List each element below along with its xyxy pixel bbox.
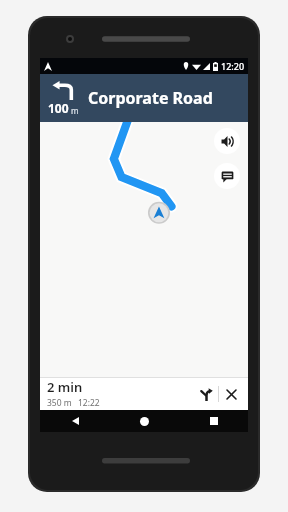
button[interactable]: 100 xyxy=(40,74,248,122)
staticText: 2 min xyxy=(47,378,83,396)
button[interactable]: Recent apps xyxy=(179,410,248,432)
staticText: Corporate Road xyxy=(88,87,213,109)
staticText: 350 m xyxy=(47,397,72,409)
button[interactable]: Back xyxy=(40,410,110,432)
button[interactable]: Home xyxy=(110,410,179,432)
staticText: 12:20 xyxy=(221,60,245,72)
button[interactable]: Route overview xyxy=(194,382,218,406)
staticText: m xyxy=(71,105,79,116)
button[interactable]: Mute voice guidance xyxy=(214,128,240,154)
button[interactable]: Report an incident xyxy=(214,163,240,189)
staticText: 100 xyxy=(48,100,69,116)
staticText: 12:22 xyxy=(78,397,100,409)
button[interactable]: 2 min xyxy=(40,377,248,410)
button[interactable]: Close navigation xyxy=(219,382,243,406)
